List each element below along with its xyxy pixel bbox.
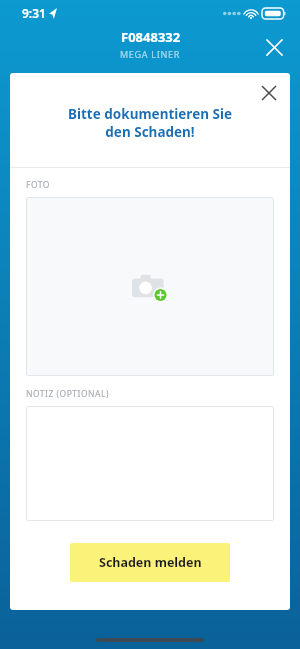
staticText: F0848332 — [121, 28, 181, 46]
staticText: Schaden melden — [99, 554, 202, 571]
button[interactable] — [26, 406, 274, 521]
button[interactable]: Schließen — [256, 29, 292, 65]
staticText: NOTIZ (OPTIONAL) — [26, 388, 109, 400]
staticText: MEGA LINER — [120, 48, 181, 60]
button[interactable]: Dialog schließen — [252, 76, 286, 110]
staticText: FOTO — [26, 179, 50, 191]
staticText: Bitte dokumentieren Sie den Schaden! — [10, 105, 290, 141]
staticText: 9:31 — [22, 5, 46, 21]
button[interactable]: Foto hinzufügen — [26, 197, 274, 376]
button[interactable]: Schaden melden — [70, 543, 230, 582]
